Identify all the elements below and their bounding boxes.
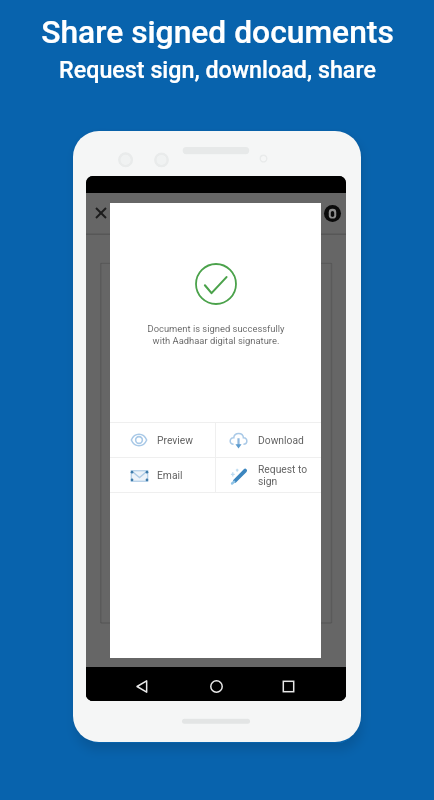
- button[interactable]: Email: [110, 458, 215, 492]
- button[interactable]: Back: [127, 671, 157, 701]
- button[interactable]: Home: [201, 671, 231, 701]
- button[interactable]: Recent apps: [273, 671, 303, 701]
- button[interactable]: Download: [216, 423, 321, 457]
- button[interactable]: Close: [89, 201, 113, 225]
- staticText: Preview: [157, 434, 193, 446]
- button[interactable]: Preview: [110, 423, 215, 457]
- button[interactable]: Request to sign: [216, 458, 321, 492]
- staticText: Email: [157, 469, 183, 481]
- staticText: Request sign, download, share: [59, 56, 376, 83]
- staticText: Request to sign: [258, 463, 308, 487]
- button[interactable]: Security info: [320, 201, 344, 225]
- staticText: Share signed documents: [41, 13, 394, 50]
- staticText: Document is signed successfully with Aad…: [147, 323, 285, 346]
- staticText: Download: [258, 434, 304, 446]
